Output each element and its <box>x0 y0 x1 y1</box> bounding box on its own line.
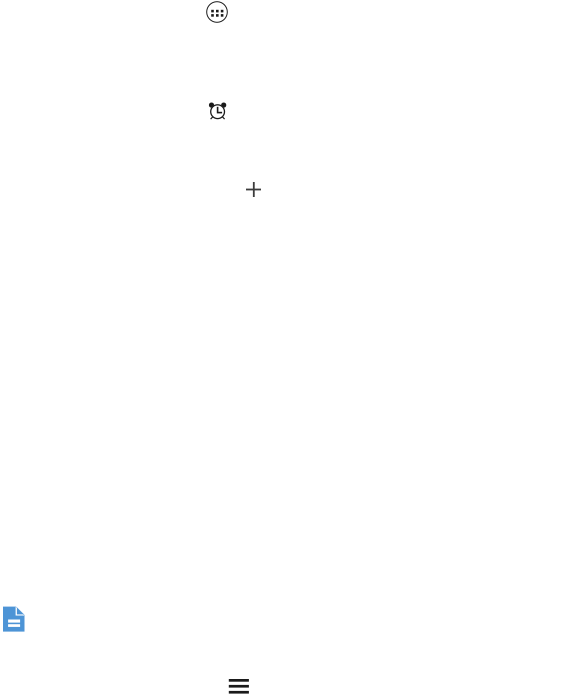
button[interactable]: Document <box>3 607 24 632</box>
button[interactable]: Alarm <box>208 101 228 121</box>
button[interactable]: Menu <box>229 679 249 694</box>
button[interactable]: Add <box>246 182 261 197</box>
button[interactable]: Apps <box>206 1 228 23</box>
